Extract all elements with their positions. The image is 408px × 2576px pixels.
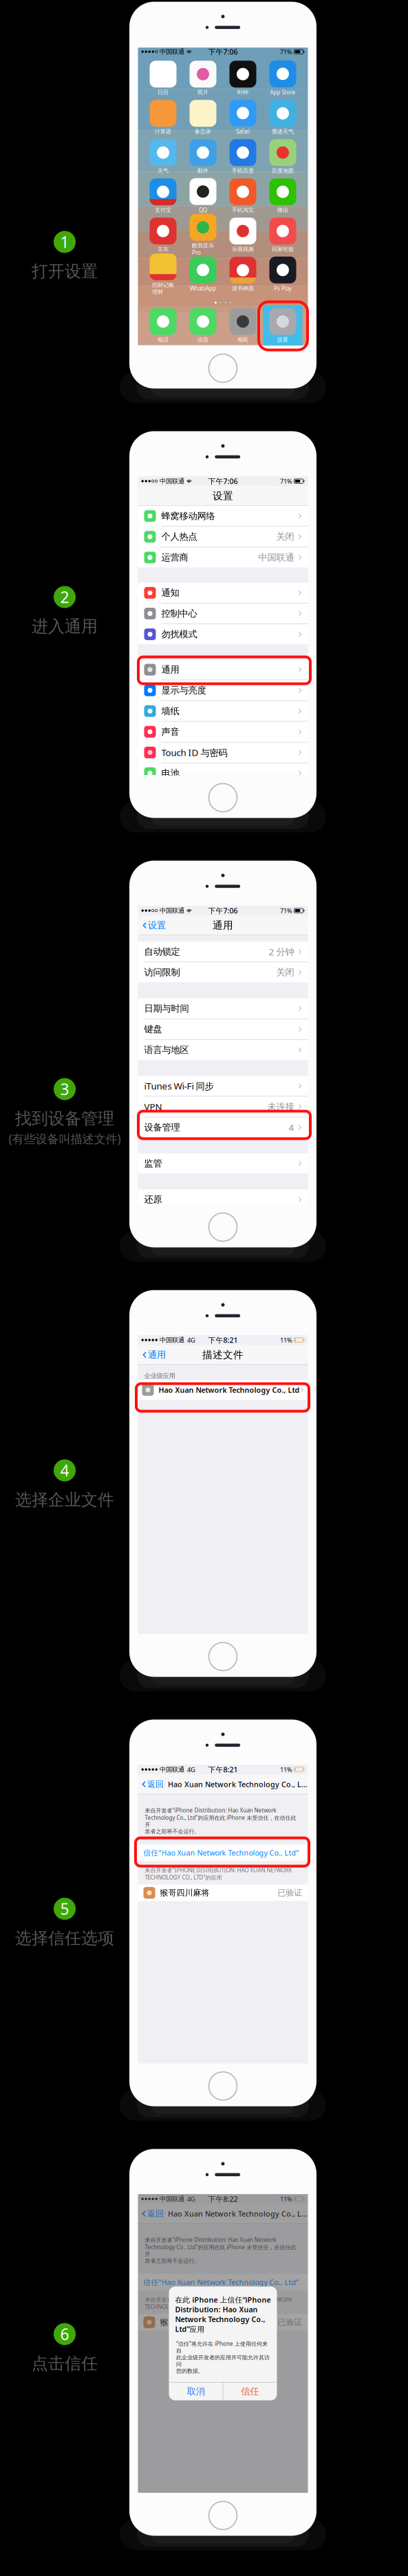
- staticText: 在此 iPhone 上信任“iPhone Distribution: Hao X…: [175, 2295, 271, 2334]
- staticText: 71%: [280, 906, 292, 915]
- button[interactable]: 信任: [223, 2382, 277, 2400]
- staticText: 支付宝: [155, 207, 171, 213]
- button[interactable]: 日历: [150, 61, 176, 95]
- staticText: 已验证: [278, 2317, 302, 2327]
- staticText: WhatsApp: [190, 285, 216, 292]
- button[interactable]: 墨迹天气: [269, 101, 296, 134]
- button[interactable]: iTunes Wi-Fi 同步: [138, 1076, 308, 1096]
- button[interactable]: 显示与亮度: [138, 680, 308, 700]
- button[interactable]: QQ: [190, 179, 216, 213]
- button[interactable]: Safari: [229, 101, 256, 134]
- button[interactable]: 微信: [269, 179, 296, 213]
- staticText: 监管: [144, 1158, 162, 1169]
- staticText: 71%: [280, 47, 292, 56]
- staticText: 声音: [161, 726, 179, 737]
- staticText: 通用: [213, 919, 233, 932]
- staticText: 电池: [161, 768, 179, 779]
- button[interactable]: 还原: [138, 1189, 308, 1210]
- button[interactable]: 百度地图: [269, 140, 296, 173]
- staticText: 酷我音乐Pro: [192, 242, 214, 256]
- staticText: 来自开发者“iPhone Distribution: Hao Xuan Netw…: [145, 2236, 296, 2264]
- button[interactable]: 设置: [138, 915, 171, 935]
- button[interactable]: 通知: [138, 583, 308, 603]
- button[interactable]: 声音: [138, 722, 308, 742]
- button[interactable]: 控制中心: [138, 603, 308, 624]
- staticText: 天气: [158, 167, 169, 174]
- button[interactable]: 通用: [138, 660, 308, 680]
- button[interactable]: 返回: [138, 2204, 168, 2224]
- staticText: 6: [60, 2324, 69, 2344]
- staticText: 4: [289, 1121, 294, 1133]
- staticText: Ps Play: [274, 285, 292, 292]
- staticText: 下午7:06: [208, 47, 238, 57]
- staticText: 还原: [144, 1194, 162, 1205]
- staticText: 2: [60, 587, 69, 607]
- staticText: 11%: [280, 1765, 292, 1774]
- staticText: 设置: [148, 920, 166, 931]
- staticText: 2 分钟: [269, 946, 294, 958]
- staticText: 计算器: [155, 128, 171, 135]
- button[interactable]: 通用: [138, 1345, 171, 1365]
- button[interactable]: 回家吃饭: [269, 218, 296, 252]
- button[interactable]: 键盘: [138, 1019, 308, 1039]
- staticText: 3: [60, 1079, 69, 1099]
- button[interactable]: 时钟: [229, 61, 256, 95]
- button[interactable]: 酷我音乐Pro: [190, 218, 216, 252]
- staticText: 11%: [280, 2195, 292, 2203]
- staticText: 关闭: [276, 531, 294, 542]
- staticText: 墙纸: [161, 705, 179, 717]
- button[interactable]: 信息: [190, 309, 216, 342]
- staticText: 打开设置: [32, 261, 98, 281]
- staticText: 下午8:21: [208, 1335, 238, 1345]
- button[interactable]: 相机: [229, 309, 256, 342]
- button[interactable]: Hao Xuan Network Technology Co., Ltd: [138, 1380, 308, 1400]
- staticText: Safari: [236, 128, 250, 135]
- button[interactable]: 追书神器: [229, 257, 256, 291]
- button[interactable]: 日期与时间: [138, 998, 308, 1019]
- staticText: 4G: [187, 1765, 195, 1774]
- button[interactable]: 返回: [138, 1774, 168, 1794]
- staticText: 进入通用: [32, 616, 98, 637]
- button[interactable]: 蜂窝移动网络: [138, 506, 308, 526]
- button[interactable]: 邮件: [190, 140, 216, 173]
- staticText: 描述文件: [202, 1349, 244, 1361]
- button[interactable]: 手机百度: [229, 140, 256, 173]
- button[interactable]: 勿扰模式: [138, 624, 308, 644]
- button[interactable]: 自动锁定: [138, 942, 308, 962]
- button[interactable]: 设置: [269, 309, 296, 342]
- button[interactable]: WhatsApp: [190, 257, 216, 291]
- button[interactable]: 墙纸: [138, 701, 308, 721]
- button[interactable]: 天气: [150, 140, 176, 173]
- staticText: Touch ID 与密码: [161, 746, 227, 759]
- staticText: 中国联通: [160, 907, 184, 915]
- button[interactable]: App Store: [269, 61, 296, 95]
- button[interactable]: 京东: [150, 218, 176, 252]
- button[interactable]: 个人热点: [138, 527, 308, 547]
- button[interactable]: 备忘录: [190, 101, 216, 134]
- button[interactable]: 乐视视频: [229, 218, 256, 252]
- button[interactable]: 取消: [169, 2382, 223, 2400]
- button[interactable]: 照片: [190, 61, 216, 95]
- staticText: 点击信任: [32, 2353, 98, 2374]
- button[interactable]: 信任“Hao Xuan Network Technology Co., Ltd”: [138, 1844, 308, 1861]
- staticText: 相机: [237, 336, 248, 343]
- staticText: 1: [60, 232, 69, 252]
- button[interactable]: 信任“Hao Xuan Network Technology Co., Ltd”: [138, 2274, 308, 2290]
- button[interactable]: 挖财记账理财: [150, 257, 176, 291]
- button[interactable]: VPN: [138, 1097, 308, 1117]
- button[interactable]: 语言与地区: [138, 1040, 308, 1060]
- button[interactable]: 监管: [138, 1153, 308, 1174]
- button[interactable]: 访问限制: [138, 962, 308, 983]
- staticText: 乐视视频: [232, 246, 254, 253]
- button[interactable]: 支付宝: [150, 179, 176, 213]
- button[interactable]: 电话: [150, 309, 176, 342]
- button[interactable]: 电池: [138, 763, 308, 783]
- button[interactable]: 计算器: [150, 101, 176, 134]
- button[interactable]: Touch ID 与密码: [138, 742, 308, 763]
- button[interactable]: Ps Play: [269, 257, 296, 291]
- staticText: 中国联通: [160, 48, 184, 56]
- button[interactable]: 手机淘宝: [229, 179, 256, 213]
- staticText: 日历: [158, 89, 169, 96]
- button[interactable]: 设备管理: [138, 1117, 308, 1137]
- button[interactable]: 运营商: [138, 547, 308, 568]
